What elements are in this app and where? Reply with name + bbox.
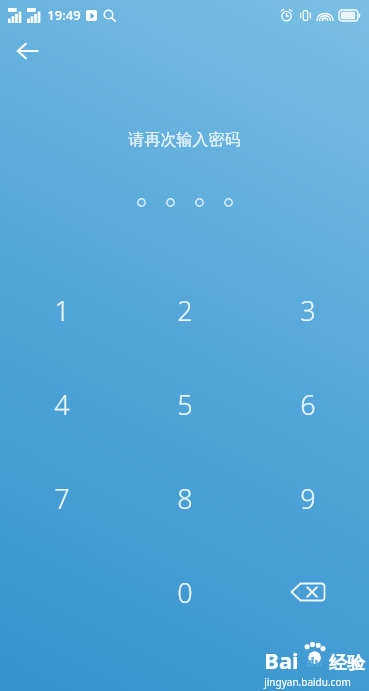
staticText: Bai — [264, 645, 299, 675]
button[interactable]: 0 — [123, 569, 246, 615]
staticText: 1 — [54, 292, 70, 329]
staticText: 19:49 — [47, 6, 81, 24]
staticText: 6 — [300, 386, 316, 423]
button[interactable]: 2 — [123, 287, 246, 333]
staticText: 经验 — [329, 652, 365, 675]
button[interactable]: 1 — [0, 287, 123, 333]
button[interactable]: 9 — [246, 475, 369, 521]
staticText: 4 — [54, 386, 70, 423]
staticText: 2 — [177, 292, 193, 329]
button[interactable]: 8 — [123, 475, 246, 521]
staticText: du — [306, 653, 323, 671]
staticText: jingyan.baidu.com — [264, 675, 351, 689]
button[interactable]: 7 — [0, 475, 123, 521]
staticText: 请再次输入密码 — [0, 130, 369, 150]
button[interactable]: 3 — [246, 287, 369, 333]
staticText: 8 — [177, 480, 193, 517]
staticText: 7 — [54, 480, 70, 517]
staticText: 9 — [300, 480, 316, 517]
staticText: 3 — [300, 292, 316, 329]
button[interactable]: 5 — [123, 381, 246, 427]
staticText: 0 — [177, 574, 193, 611]
button[interactable]: 6 — [246, 381, 369, 427]
button[interactable]: Delete — [246, 569, 369, 615]
button[interactable]: Back — [6, 30, 48, 72]
button[interactable]: 4 — [0, 381, 123, 427]
staticText: 5 — [177, 386, 193, 423]
